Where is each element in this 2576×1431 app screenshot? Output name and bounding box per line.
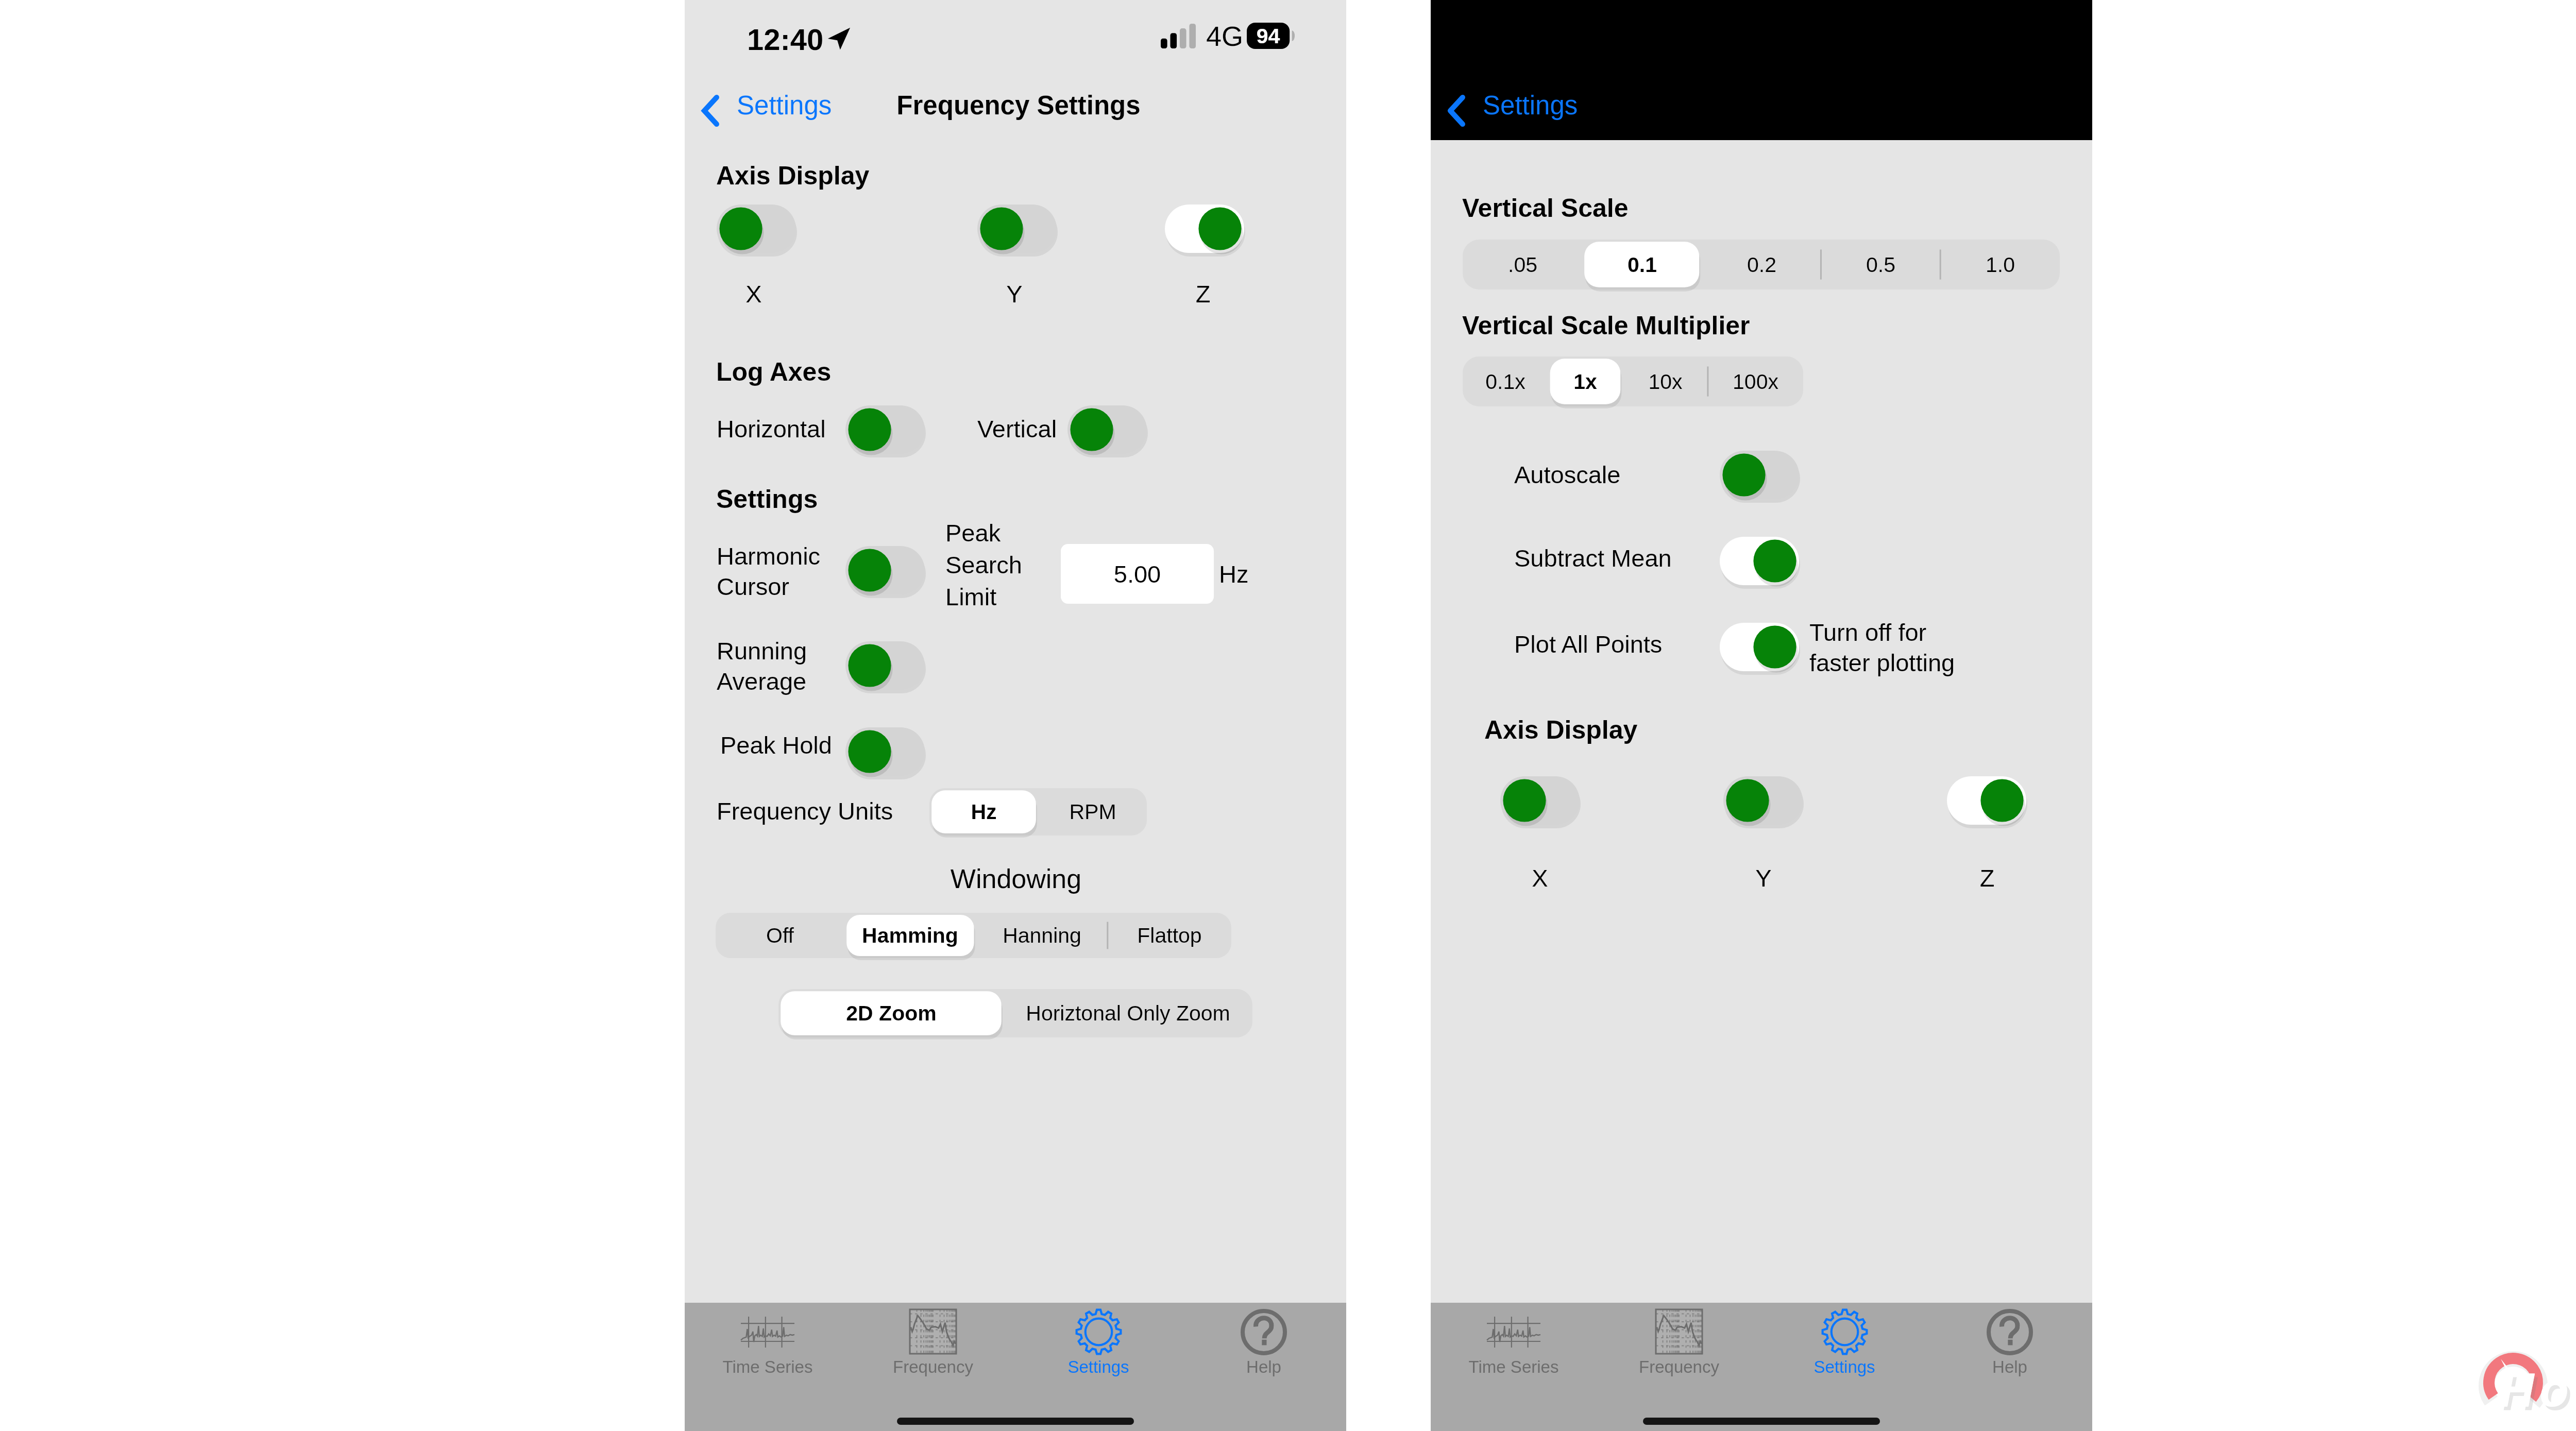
button[interactable]: Y axis display (977, 205, 1057, 253)
staticText: Help (1161, 1357, 1367, 1431)
button[interactable]: .05 (1463, 240, 1582, 289)
staticText: Hanning (1003, 924, 1081, 947)
staticText: Z (1136, 280, 1270, 391)
staticText: Help (1907, 1357, 2113, 1431)
staticText: Plot All Points (1514, 631, 1663, 658)
button[interactable]: Back to Settings (697, 88, 846, 134)
button[interactable]: Time Series tab (1431, 1303, 1596, 1393)
button[interactable]: Plot all points (1720, 623, 1799, 671)
staticText: Horiztonal Only Zoom (1026, 1001, 1230, 1025)
button[interactable]: Settings tab (1015, 1303, 1181, 1393)
button[interactable]: Horiztonal Only Zoom (1004, 989, 1252, 1037)
button[interactable]: Help tab (1181, 1303, 1346, 1393)
staticText: Settings (737, 91, 832, 120)
button[interactable]: Help tab (1927, 1303, 2092, 1393)
staticText: 10x (1648, 370, 1683, 394)
staticText: Log Axes (716, 357, 832, 386)
button[interactable]: Harmonic cursor (845, 546, 925, 594)
staticText: Vertical Scale (1462, 194, 1629, 223)
staticText: Hz (1219, 560, 1249, 588)
staticText: Hz (971, 800, 997, 824)
staticText: Settings (995, 1357, 1201, 1431)
staticText: 100x (1733, 370, 1778, 394)
staticText: Y (947, 280, 1081, 391)
staticText: Frequency (830, 1357, 1036, 1431)
staticText: 0.1x (1485, 370, 1526, 394)
staticText: Hotcars (2503, 1367, 2576, 1420)
staticText: 5.00 (1061, 560, 1214, 672)
button[interactable]: Frequency tab (850, 1303, 1015, 1393)
button[interactable]: Frequency tab (1596, 1303, 1761, 1393)
button[interactable]: Hamming (844, 913, 976, 958)
staticText: RPM (1069, 800, 1116, 824)
button[interactable]: Back to Settings (1443, 88, 1592, 134)
button[interactable]: 0.1 (1582, 240, 1702, 289)
button[interactable]: Vertical log axis (1067, 405, 1147, 454)
button[interactable]: Peak hold (845, 727, 925, 776)
staticText: Time Series (1411, 1357, 1617, 1431)
staticText: Frequency Settings (869, 91, 1168, 212)
staticText: Running Average (717, 637, 807, 695)
button[interactable]: 100x (1708, 356, 1803, 406)
button[interactable]: Y axis display (1723, 776, 1803, 825)
staticText: Z (1915, 864, 2059, 976)
button[interactable]: 10x (1623, 356, 1708, 406)
staticText: Off (766, 924, 794, 947)
button[interactable]: Subtract mean (1720, 537, 1799, 585)
staticText: Axis Display (716, 161, 870, 190)
button[interactable]: Horizontal log axis (845, 405, 925, 454)
staticText: Vertical (977, 415, 1057, 442)
button[interactable]: 0.1x (1463, 356, 1548, 406)
staticText: X (1468, 864, 1612, 976)
button[interactable]: Flattop (1108, 913, 1231, 958)
staticText: Settings (716, 485, 818, 514)
staticText: Peak Search Limit (945, 519, 1022, 610)
button[interactable]: X axis display (1500, 776, 1580, 825)
staticText: Peak Hold (720, 731, 832, 759)
staticText: Vertical Scale Multiplier (1462, 311, 1750, 340)
staticText: Windowing (861, 864, 1171, 987)
staticText: Settings (1741, 1357, 1947, 1431)
button[interactable]: 1.0 (1940, 240, 2060, 289)
staticText: Hamming (862, 924, 958, 947)
staticText: Axis Display (1484, 715, 1638, 744)
staticText: Autoscale (1514, 461, 1621, 488)
button[interactable]: X axis display (717, 205, 796, 253)
staticText: 1.0 (1986, 253, 2015, 277)
button[interactable]: Time Series tab (685, 1303, 850, 1393)
staticText: 0.5 (1866, 253, 1895, 277)
staticText: 0.2 (1747, 253, 1776, 277)
button[interactable]: Running average (845, 641, 925, 690)
staticText: 94 (1247, 24, 1290, 122)
staticText: 1x (1573, 370, 1597, 394)
staticText: X (687, 280, 821, 391)
staticText: .05 (1508, 253, 1537, 277)
staticText: Turn off for faster plotting (1809, 619, 1955, 676)
button[interactable]: Off (716, 913, 844, 958)
staticText: Frequency (1576, 1357, 1782, 1431)
button[interactable]: Hanning (976, 913, 1108, 958)
staticText: 4G (1206, 21, 1244, 52)
staticText: Y (1691, 864, 1836, 976)
staticText: 2D Zoom (846, 1001, 937, 1025)
staticText: Time Series (665, 1357, 871, 1431)
staticText: Horizontal (717, 415, 826, 442)
button[interactable]: 0.5 (1821, 240, 1940, 289)
button[interactable]: Hz (929, 788, 1038, 836)
button[interactable]: 1x (1548, 356, 1622, 406)
button[interactable]: 0.2 (1702, 240, 1821, 289)
button[interactable]: Peak search limit value (1061, 544, 1214, 604)
button[interactable]: Autoscale (1720, 451, 1799, 499)
staticText: Frequency Units (717, 797, 893, 825)
staticText: 0.1 (1628, 253, 1657, 277)
button[interactable]: Z axis display (1947, 776, 2026, 825)
button[interactable]: 2D Zoom (778, 989, 1004, 1037)
button[interactable]: Z axis display (1165, 205, 1244, 253)
staticText: 12:40 (747, 23, 824, 56)
staticText: Subtract Mean (1514, 544, 1672, 572)
staticText: Flattop (1137, 924, 1202, 947)
staticText: Settings (1483, 91, 1578, 120)
button[interactable]: RPM (1038, 788, 1147, 836)
button[interactable]: Settings tab (1761, 1303, 1927, 1393)
staticText: Hotcars (2500, 1364, 2576, 1417)
